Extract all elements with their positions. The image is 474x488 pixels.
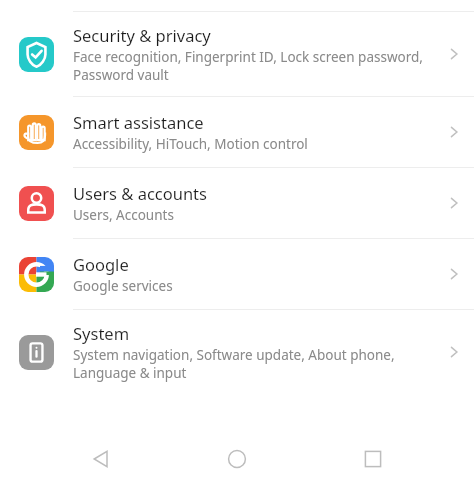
staticText: Users & accounts — [73, 182, 207, 204]
staticText: System navigation, Software update, Abou… — [73, 346, 426, 382]
staticText: Face recognition, Fingerprint ID, Lock s… — [73, 48, 426, 84]
staticText: System — [73, 322, 130, 344]
staticText: Smart assistance — [73, 111, 204, 133]
staticText: Users, Accounts — [73, 206, 174, 224]
staticText: Accessibility, HiTouch, Motion control — [73, 135, 308, 153]
button[interactable]: Security & privacy — [0, 12, 474, 96]
staticText: Google — [73, 253, 129, 275]
button[interactable]: Google — [0, 239, 474, 309]
button[interactable]: Smart assistance — [0, 97, 474, 167]
button[interactable]: Back — [73, 431, 129, 487]
button[interactable]: System — [0, 310, 474, 394]
button[interactable]: Home — [209, 431, 265, 487]
staticText: Google services — [73, 277, 173, 295]
button[interactable]: Recents — [345, 431, 401, 487]
staticText: Security & privacy — [73, 24, 211, 46]
button[interactable]: Users & accounts — [0, 168, 474, 238]
